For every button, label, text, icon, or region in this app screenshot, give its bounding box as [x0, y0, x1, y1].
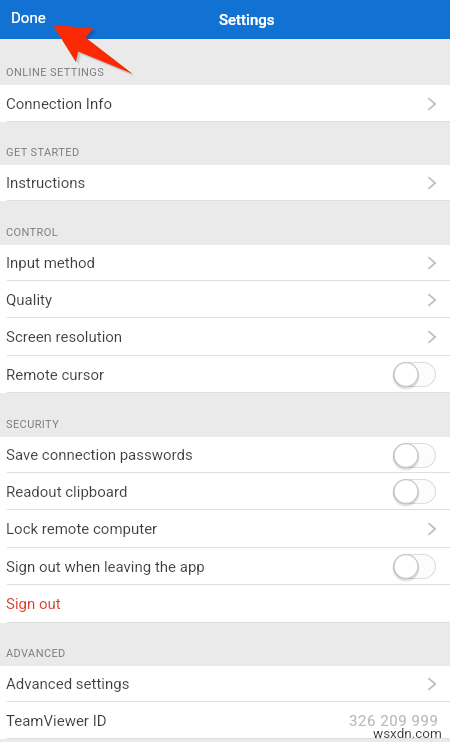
staticText: Settings [219, 11, 275, 29]
staticText: Save connection passwords [6, 446, 193, 464]
staticText: Lock remote computer [6, 520, 158, 538]
button[interactable]: Advanced settings [0, 666, 450, 702]
button[interactable]: Save connection passwords [0, 437, 450, 473]
button[interactable]: Sign out when leaving the app [0, 548, 450, 585]
staticText: Advanced settings [6, 675, 130, 693]
button[interactable]: Toggle Sign out when leaving the app [393, 554, 436, 579]
staticText: CONTROL [6, 226, 59, 239]
staticText: Sign out [6, 595, 61, 613]
button[interactable]: Remote cursor [0, 356, 450, 393]
staticText: TeamViewer ID [6, 712, 107, 730]
staticText: SECURITY [6, 418, 60, 431]
button[interactable]: Connection Info [0, 85, 450, 122]
button[interactable]: Lock remote computer [0, 510, 450, 548]
staticText: Instructions [6, 174, 86, 192]
button[interactable]: Done [0, 1, 58, 38]
staticText: ADVANCED [6, 647, 66, 660]
staticText: Remote cursor [6, 366, 105, 384]
button[interactable]: Sign out [0, 585, 450, 623]
staticText: Screen resolution [6, 328, 123, 346]
button[interactable]: Toggle Save connection passwords [393, 443, 436, 468]
button[interactable]: Instructions [0, 165, 450, 201]
button[interactable]: Input method [0, 245, 450, 281]
staticText: Connection Info [6, 95, 112, 113]
button[interactable]: Quality [0, 281, 450, 318]
button[interactable]: TeamViewer ID [0, 702, 450, 739]
button[interactable]: Toggle Readout clipboard [393, 479, 436, 504]
staticText: Quality [6, 291, 53, 309]
button[interactable]: Screen resolution [0, 318, 450, 356]
staticText: GET STARTED [6, 146, 80, 159]
button[interactable]: Toggle Remote cursor [393, 362, 436, 387]
staticText: Done [11, 9, 46, 27]
button[interactable]: Readout clipboard [0, 473, 450, 510]
staticText: ONLINE SETTINGS [6, 66, 105, 79]
staticText: Readout clipboard [6, 483, 128, 501]
staticText: Input method [6, 254, 95, 272]
staticText: 326 209 999 [349, 712, 439, 730]
staticText: Sign out when leaving the app [6, 558, 205, 576]
staticText: wsxdn.com [373, 725, 442, 741]
